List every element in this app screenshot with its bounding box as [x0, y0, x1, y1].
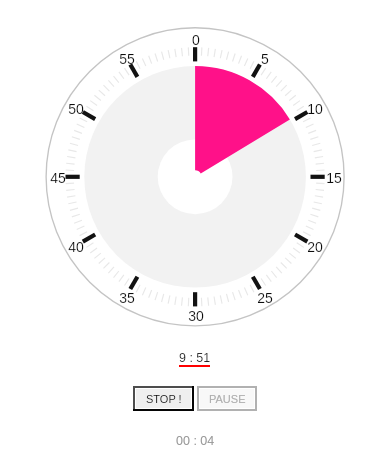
staticText: 10 — [307, 101, 323, 117]
staticText: 25 — [257, 290, 273, 306]
staticText: 50 — [68, 101, 84, 117]
button[interactable]: PAUSE — [197, 386, 257, 411]
staticText: 00 : 04 — [176, 434, 215, 448]
button[interactable]: STOP ! — [133, 386, 194, 411]
staticText: 20 — [307, 239, 323, 255]
staticText: 0 — [192, 32, 200, 48]
staticText: 40 — [68, 239, 84, 255]
button[interactable]: 9 : 51 — [178, 351, 212, 371]
staticText: 15 — [326, 170, 342, 186]
staticText: 55 — [119, 51, 135, 67]
staticText: STOP ! — [146, 393, 182, 405]
staticText: 30 — [188, 308, 204, 324]
staticText: 9 : 51 — [179, 351, 211, 365]
staticText: PAUSE — [209, 393, 246, 405]
staticText: 35 — [119, 290, 135, 306]
staticText: 5 — [261, 51, 269, 67]
staticText: 45 — [50, 170, 66, 186]
